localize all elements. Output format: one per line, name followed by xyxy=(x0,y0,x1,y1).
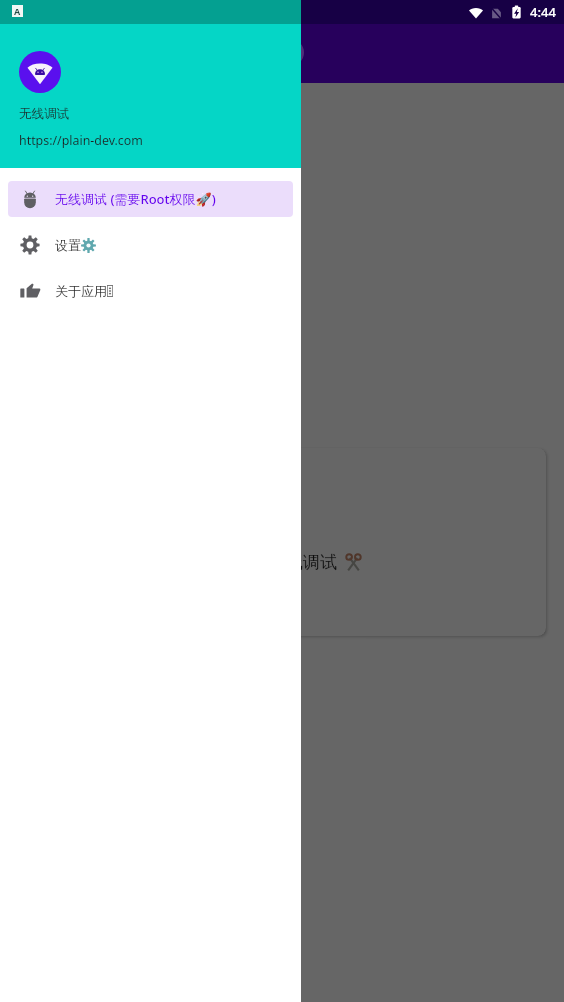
staticText: 无线调试 xyxy=(19,106,69,122)
button[interactable]: Open navigation drawer xyxy=(277,39,304,66)
button[interactable]: 关于应用 xyxy=(8,273,293,309)
button[interactable]: 应用图标 无线调试 xyxy=(19,51,61,93)
staticText: 4:44 xyxy=(530,3,556,21)
staticText: 无线调试 (需要Root权限🚀) xyxy=(55,190,216,208)
button[interactable]: 点击断开无线调试 xyxy=(18,448,546,636)
staticText: 关于应用 xyxy=(55,283,107,299)
staticText: 设置 xyxy=(55,237,81,253)
staticText: A xyxy=(14,5,21,17)
staticText: 点击断开无线调试 xyxy=(201,552,337,573)
button[interactable]: 设置 xyxy=(8,227,293,263)
staticText: https://plain-dev.com xyxy=(19,132,143,149)
button[interactable]: 无线调试 (需要Root权限🚀) xyxy=(8,181,293,217)
